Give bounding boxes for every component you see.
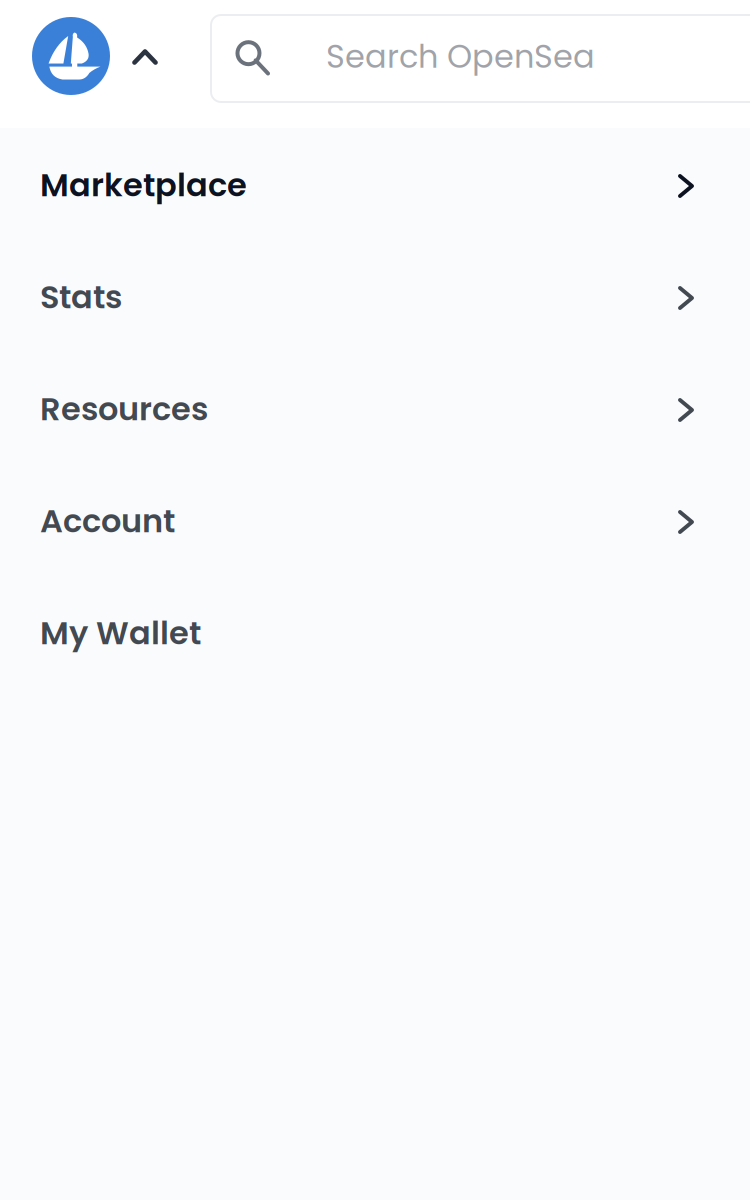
button[interactable]: Collapse menu <box>118 30 172 84</box>
button[interactable]: My Wallet <box>0 576 750 688</box>
staticText: Stats <box>40 275 122 319</box>
staticText: Account <box>40 499 175 543</box>
staticText: Resources <box>40 387 208 431</box>
staticText: My Wallet <box>40 611 201 655</box>
button[interactable]: Account <box>0 464 750 576</box>
button[interactable]: Resources <box>0 352 750 464</box>
staticText: Marketplace <box>40 163 247 207</box>
button[interactable]: OpenSea home <box>32 17 110 95</box>
staticText: Search OpenSea <box>326 34 595 79</box>
button[interactable]: Search OpenSea <box>211 15 750 102</box>
button[interactable]: Stats <box>0 240 750 352</box>
button[interactable]: Marketplace <box>0 128 750 240</box>
